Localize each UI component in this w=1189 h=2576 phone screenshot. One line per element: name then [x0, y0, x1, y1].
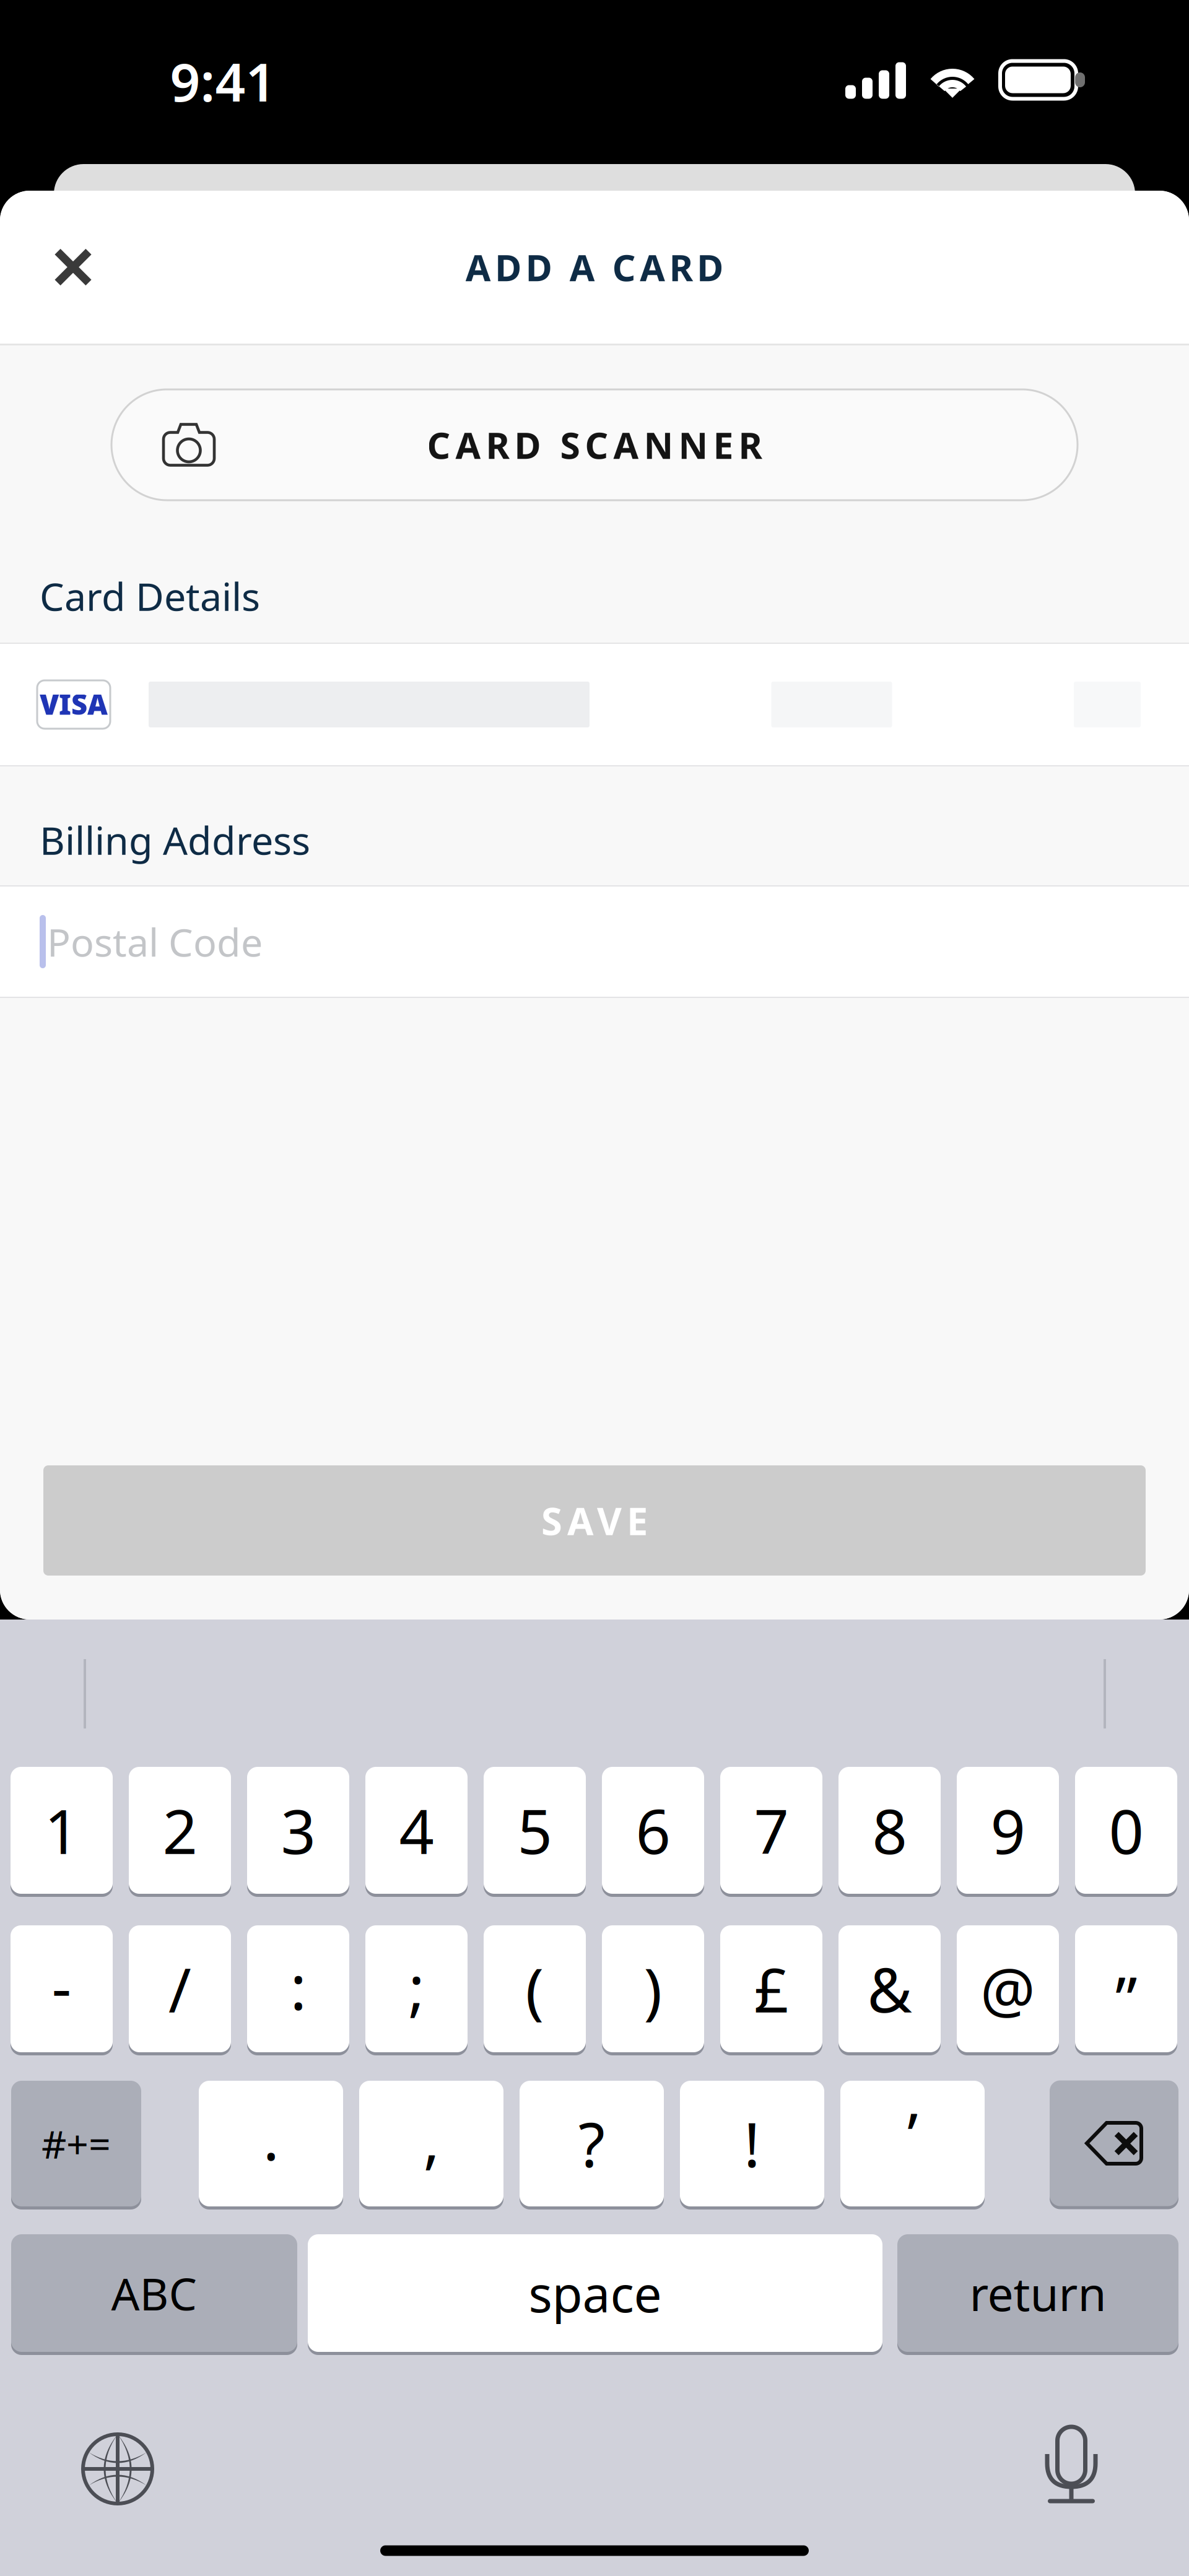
button[interactable]: , [359, 2079, 503, 2208]
staticText: 8 [872, 1790, 907, 1871]
button[interactable]: space [308, 2233, 882, 2353]
staticText: 0 [1109, 1790, 1143, 1871]
button[interactable]: ) [602, 1924, 704, 2054]
staticText: 3 [281, 1790, 316, 1871]
button[interactable]: Dictate [1044, 2425, 1099, 2507]
button[interactable]: SAVE [0, 1465, 1189, 1576]
button[interactable]: 0 [1075, 1765, 1177, 1895]
staticText: return [969, 2262, 1106, 2324]
button[interactable]: 8 [838, 1765, 941, 1895]
staticText: , [423, 2098, 439, 2179]
staticText: ? [578, 2103, 605, 2184]
staticText: - [52, 1946, 72, 2027]
staticText: ) [644, 1948, 662, 2029]
staticText: 5 [517, 1790, 552, 1871]
staticText: VISA [40, 685, 108, 723]
staticText: space [529, 2260, 662, 2326]
staticText: ” [1115, 1957, 1137, 2038]
staticText: ADD A CARD [466, 243, 723, 291]
staticText: 9 [991, 1790, 1025, 1871]
button[interactable]: ( [484, 1924, 586, 2054]
staticText: #+= [41, 2118, 111, 2169]
button[interactable]: 4 [365, 1765, 468, 1895]
button[interactable]: 6 [602, 1765, 704, 1895]
staticText: & [867, 1948, 912, 2029]
button[interactable]: 3 [247, 1765, 349, 1895]
button[interactable]: ABC [11, 2233, 297, 2353]
staticText: ’ [907, 2093, 918, 2174]
button[interactable]: return [897, 2233, 1178, 2353]
button[interactable]: @ [957, 1924, 1059, 2054]
button[interactable]: 1 [11, 1765, 113, 1895]
button[interactable]: . [199, 2079, 343, 2208]
button[interactable]: ! [680, 2079, 824, 2208]
button[interactable]: #+= [11, 2079, 141, 2208]
button[interactable]: Delete [1050, 2079, 1178, 2208]
button[interactable]: Next keyboard [81, 2432, 154, 2505]
button[interactable]: Close [36, 230, 110, 304]
staticText: CARD SCANNER [427, 421, 762, 469]
staticText: ABC [111, 2263, 197, 2323]
staticText: 6 [636, 1790, 670, 1871]
staticText: £ [754, 1948, 789, 2029]
staticText: / [168, 1948, 191, 2029]
staticText: 2 [163, 1790, 197, 1871]
button[interactable]: & [838, 1924, 941, 2054]
button[interactable]: - [11, 1924, 113, 2054]
staticText: 9:41 [170, 46, 276, 116]
staticText: Billing Address [40, 814, 310, 865]
button[interactable]: £ [720, 1924, 822, 2054]
staticText: : [290, 1946, 306, 2027]
button[interactable]: CARD SCANNER [0, 389, 1189, 500]
button[interactable]: 2 [129, 1765, 231, 1895]
button[interactable]: 7 [720, 1765, 822, 1895]
button[interactable]: 9 [957, 1765, 1059, 1895]
button[interactable]: ’ [840, 2079, 985, 2208]
staticText: Postal Code [47, 916, 263, 967]
button[interactable]: ? [520, 2079, 664, 2208]
staticText: ; [408, 1946, 425, 2027]
staticText: @ [980, 1948, 1035, 2029]
staticText: 7 [754, 1790, 789, 1871]
staticText: ! [744, 2103, 760, 2184]
button[interactable]: 5 [484, 1765, 586, 1895]
button[interactable]: : [247, 1924, 349, 2054]
staticText: SAVE [541, 1495, 648, 1546]
staticText: 1 [44, 1790, 79, 1871]
button[interactable]: ; [365, 1924, 468, 2054]
button[interactable]: / [129, 1924, 231, 2054]
staticText: ( [525, 1948, 544, 2029]
staticText: Card Details [40, 570, 260, 622]
button[interactable]: ” [1075, 1924, 1177, 2054]
staticText: . [263, 2096, 279, 2177]
staticText: 4 [399, 1790, 434, 1871]
